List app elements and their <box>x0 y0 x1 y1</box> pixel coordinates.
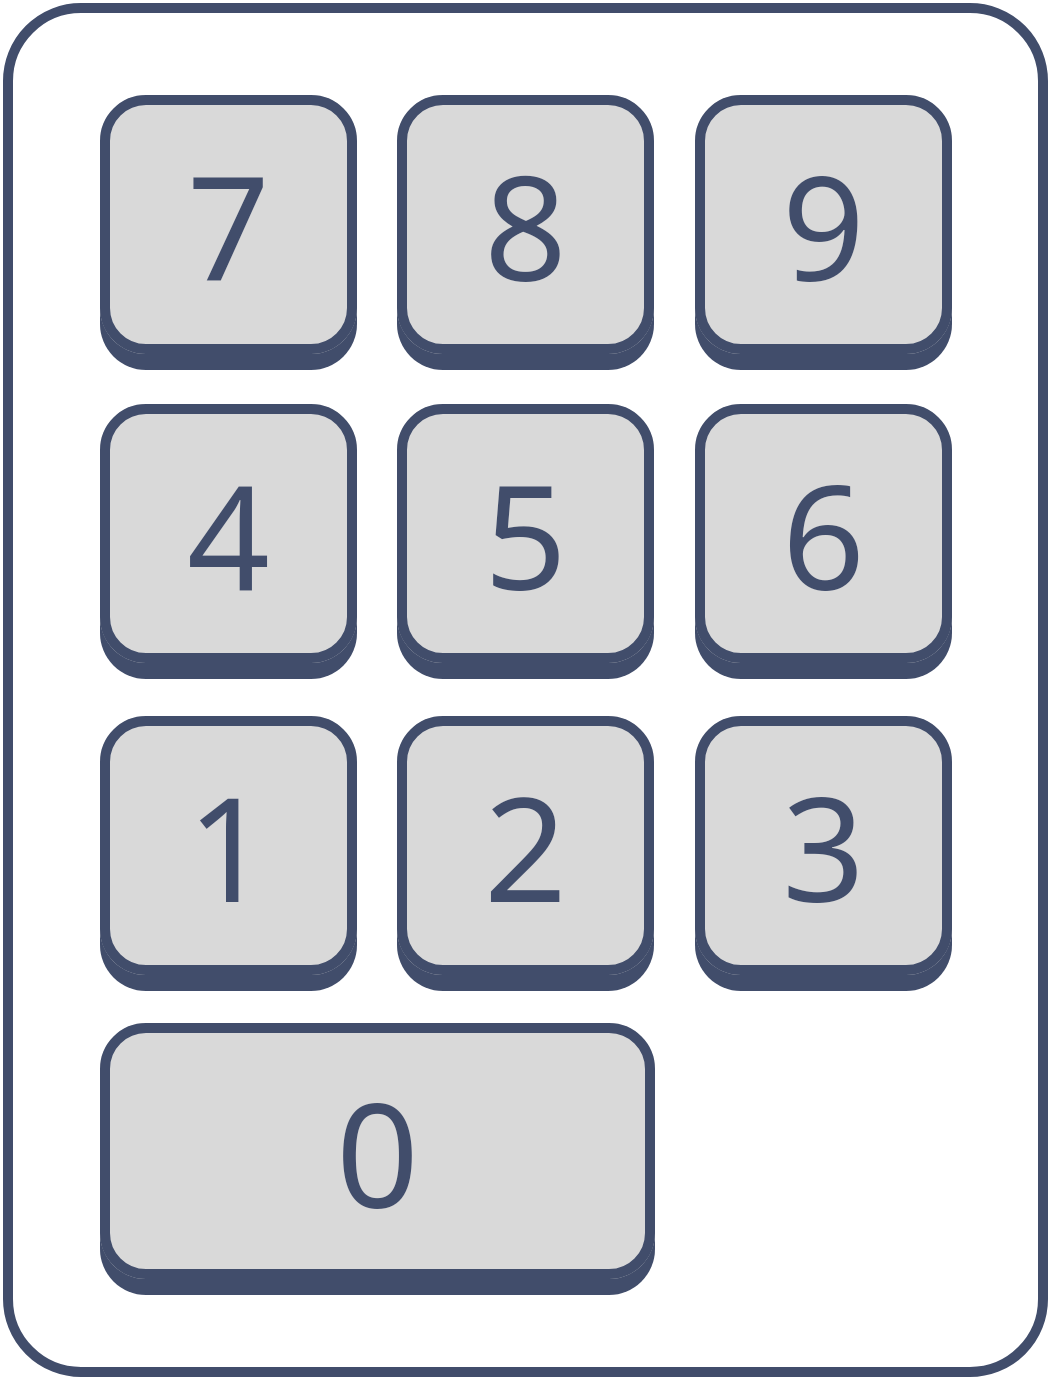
button[interactable]: 0 <box>100 1023 655 1295</box>
staticText: 0 <box>336 1053 419 1250</box>
button[interactable]: 6 <box>695 404 952 679</box>
button[interactable]: 8 <box>397 95 654 370</box>
button[interactable]: 4 <box>100 404 357 679</box>
staticText: 3 <box>782 747 865 944</box>
button[interactable]: 9 <box>695 95 952 370</box>
staticText: 6 <box>782 435 865 632</box>
button[interactable]: 1 <box>100 716 357 991</box>
button[interactable]: 7 <box>100 95 357 370</box>
button[interactable]: 3 <box>695 716 952 991</box>
staticText: 7 <box>187 126 270 323</box>
staticText: 5 <box>484 435 567 632</box>
staticText: 4 <box>187 435 270 632</box>
button[interactable]: 2 <box>397 716 654 991</box>
staticText: 2 <box>484 747 567 944</box>
staticText: 8 <box>484 126 567 323</box>
staticText: 1 <box>187 747 270 944</box>
button[interactable]: 5 <box>397 404 654 679</box>
staticText: 9 <box>782 126 865 323</box>
